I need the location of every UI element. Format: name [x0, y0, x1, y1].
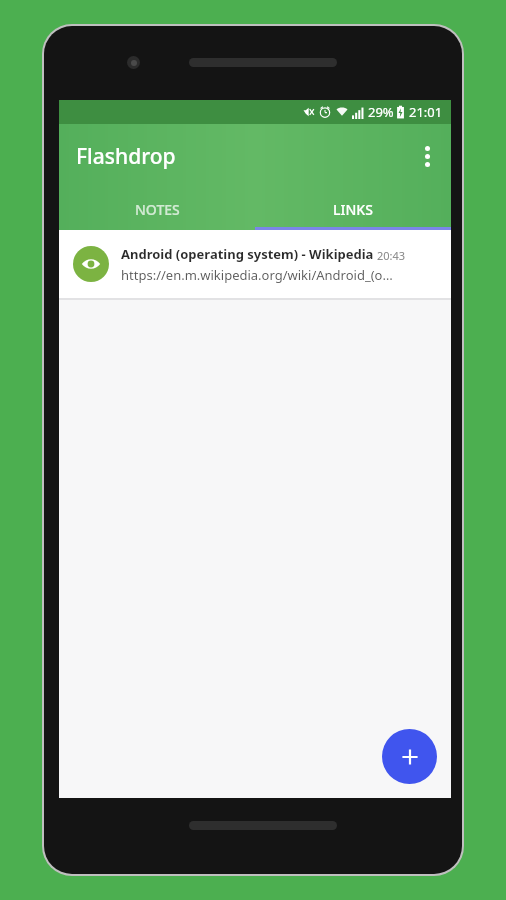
staticText: https://en.m.wikipedia.org/wiki/Android_…: [121, 266, 393, 284]
button[interactable]: Android (operating system) - Wikipedia: [59, 230, 451, 298]
staticText: Flashdrop: [76, 142, 176, 171]
staticText: 29%: [368, 103, 394, 121]
staticText: Android (operating system) - Wikipedia: [121, 245, 374, 263]
staticText: 20:43: [377, 248, 406, 263]
staticText: 21:01: [409, 103, 443, 121]
staticText: LINKS: [333, 200, 373, 219]
button[interactable]: NOTES: [59, 188, 255, 230]
button[interactable]: More options: [403, 132, 451, 180]
staticText: NOTES: [135, 200, 180, 219]
button[interactable]: LINKS: [255, 188, 451, 230]
button[interactable]: Add: [382, 729, 437, 784]
